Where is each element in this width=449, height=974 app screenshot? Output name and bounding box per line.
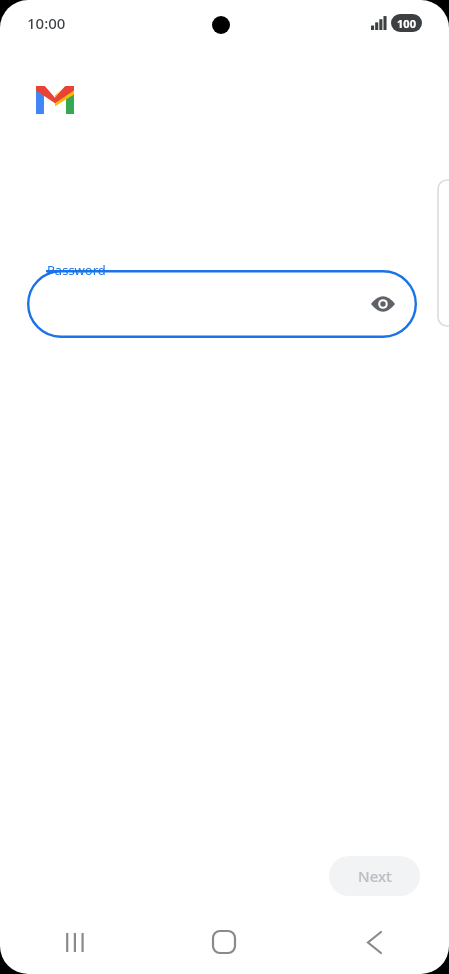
button[interactable]: Home xyxy=(149,910,299,974)
staticText: Next xyxy=(358,866,392,886)
staticText: 100 xyxy=(397,16,416,31)
button[interactable]: Password xyxy=(27,270,417,338)
button[interactable]: Recent apps xyxy=(0,910,149,974)
staticText: 10:00 xyxy=(27,13,66,33)
staticText: Password xyxy=(47,261,106,279)
button[interactable]: Back xyxy=(299,910,449,974)
button[interactable]: Next xyxy=(329,856,420,896)
button[interactable]: Show password xyxy=(363,284,403,324)
